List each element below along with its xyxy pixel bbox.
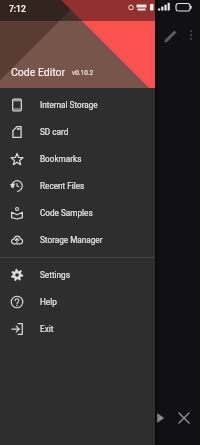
button[interactable]: Storage Manager [0, 226, 155, 253]
button[interactable]: Help [0, 288, 155, 315]
button[interactable]: Settings [0, 261, 155, 288]
button[interactable]: More options [182, 26, 200, 44]
staticText: Storage Manager [40, 235, 103, 245]
button[interactable]: Recent Files [0, 172, 155, 199]
staticText: Bookmarks [40, 154, 82, 164]
button[interactable]: Edit [160, 26, 180, 46]
button[interactable]: Internal Storage [0, 91, 155, 118]
staticText: Settings [40, 270, 70, 280]
button[interactable]: Exit [0, 315, 155, 342]
staticText: Code Editor [11, 66, 66, 78]
button[interactable]: Code Samples [0, 199, 155, 226]
staticText: Help [40, 297, 57, 307]
button[interactable]: Close [172, 406, 196, 430]
staticText: Exit [40, 324, 54, 334]
button[interactable]: SD card [0, 118, 155, 145]
button[interactable]: Run [148, 406, 172, 430]
staticText: Code Samples [40, 208, 93, 218]
staticText: Internal Storage [40, 100, 98, 110]
staticText: SD card [40, 127, 69, 137]
button[interactable]: Bookmarks [0, 145, 155, 172]
staticText: v0.10.2 [72, 69, 94, 77]
staticText: 7:12 [9, 4, 26, 14]
staticText: Recent Files [40, 181, 85, 191]
